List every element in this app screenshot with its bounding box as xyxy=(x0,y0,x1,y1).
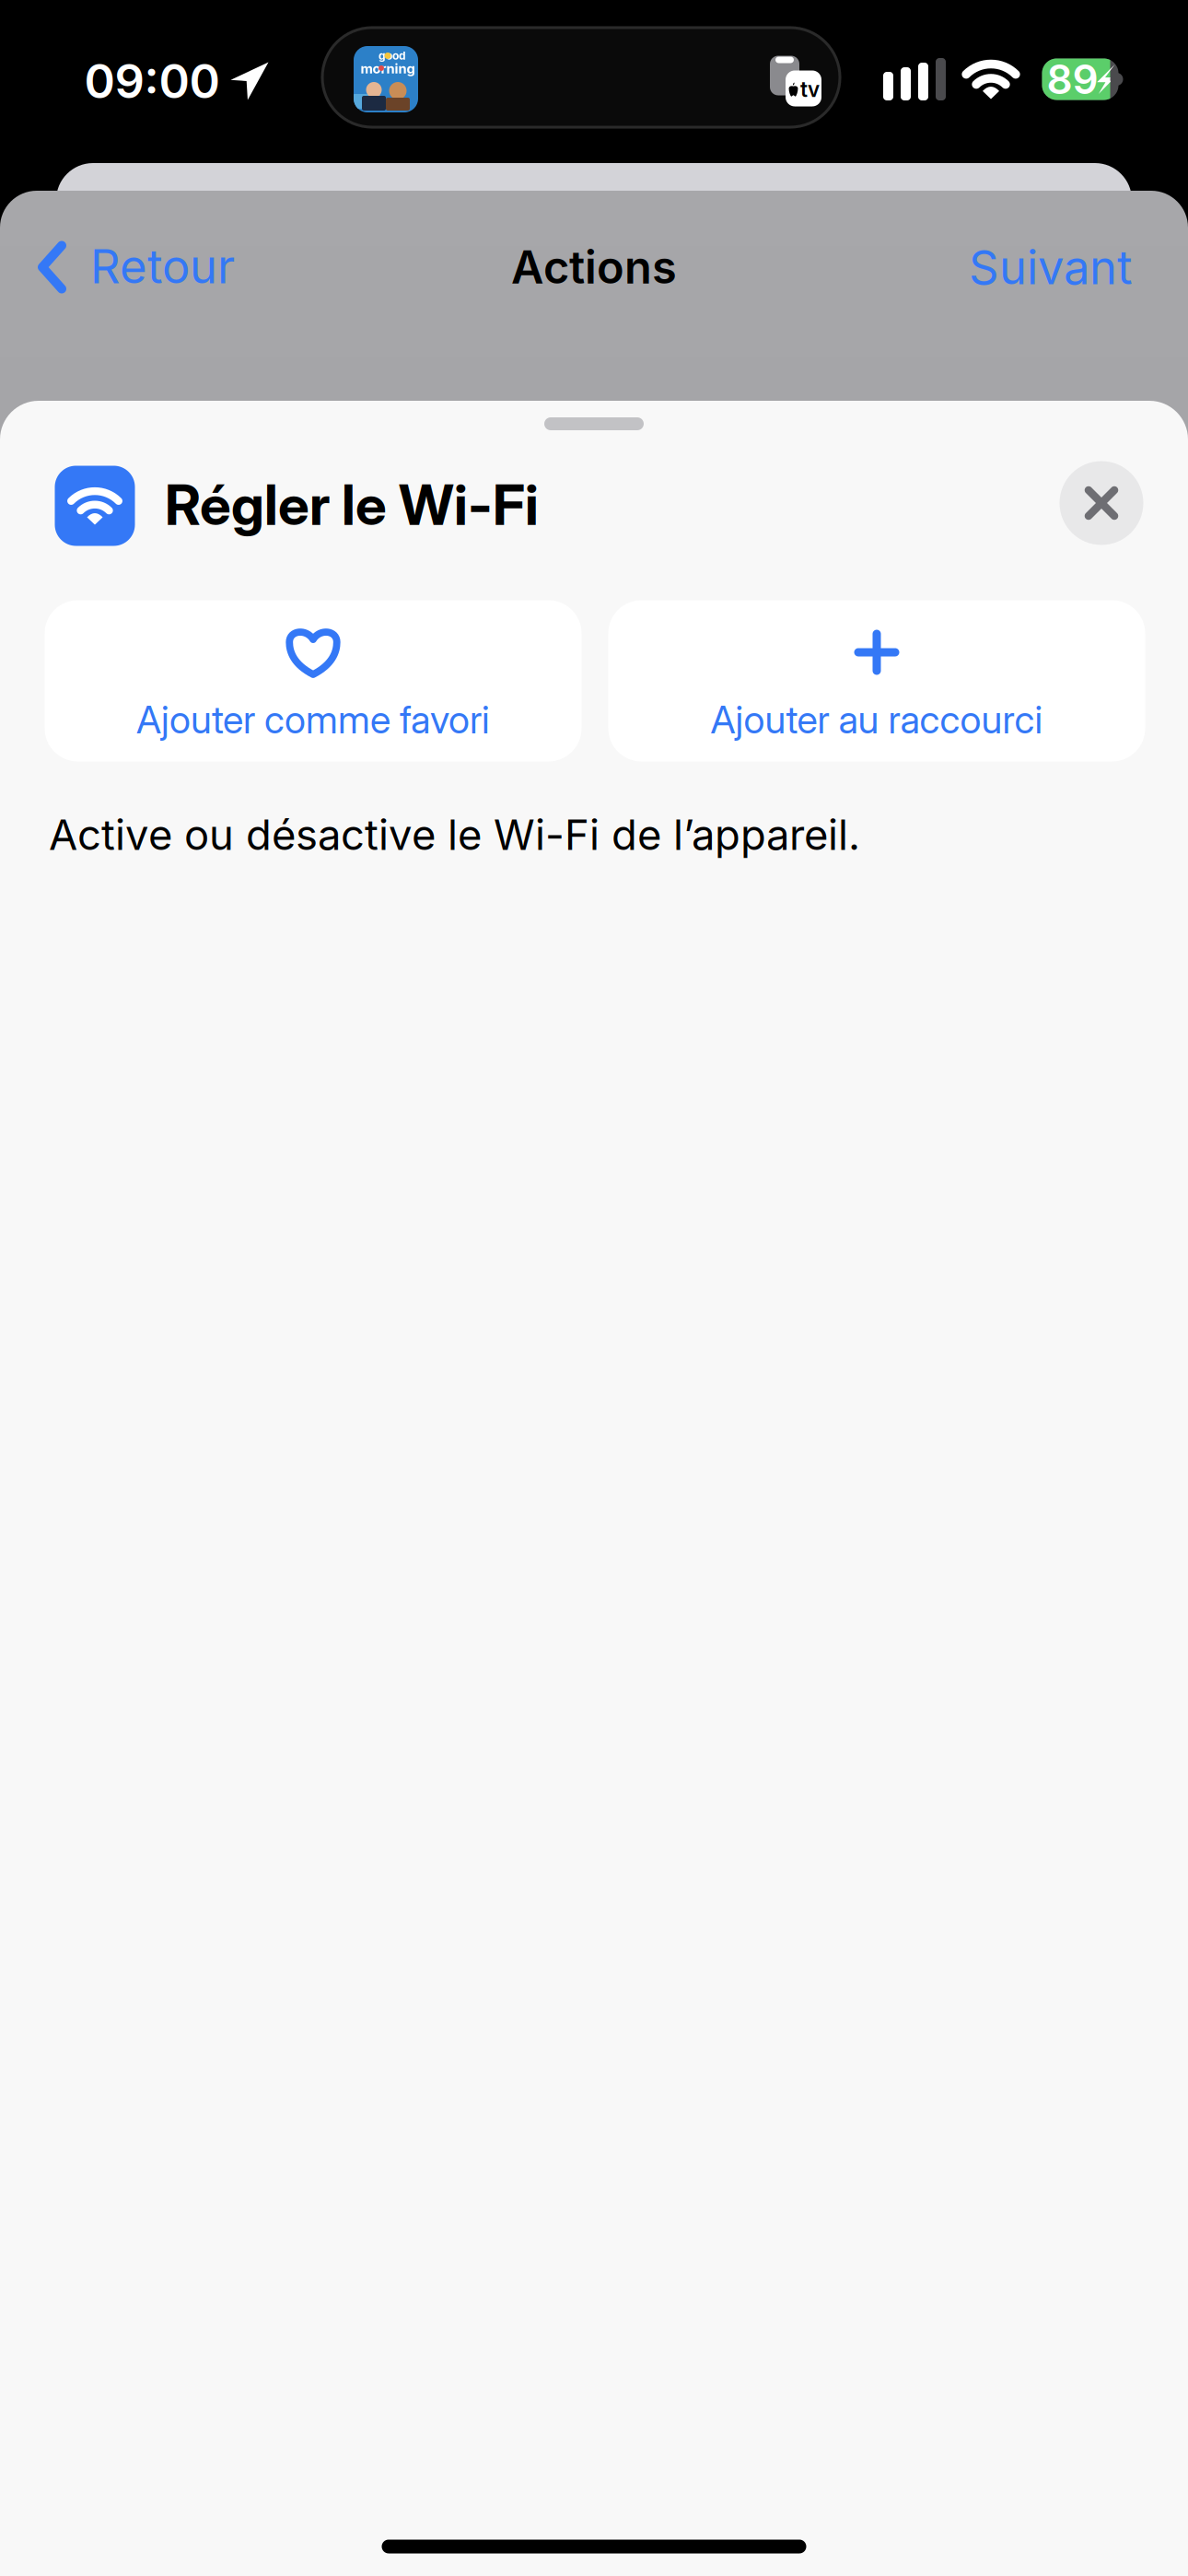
staticText: Actions xyxy=(511,240,677,294)
staticText: Active ou désactive le Wi-Fi de l’appare… xyxy=(49,809,860,860)
staticText: good xyxy=(379,49,406,62)
staticText: Ajouter au raccourci xyxy=(710,697,1043,743)
staticText: Ajouter comme favori xyxy=(136,697,490,743)
staticText: 09:00 xyxy=(84,53,220,109)
staticText: Retour xyxy=(90,238,235,294)
staticText: Suivant xyxy=(969,239,1133,295)
staticText: morning xyxy=(361,60,415,77)
staticText: tv xyxy=(800,77,820,102)
button[interactable]: Ajouter au raccourci xyxy=(608,600,1145,761)
button[interactable]: Suivant xyxy=(949,219,1153,316)
button[interactable]: Ajouter comme favori xyxy=(45,600,582,761)
button[interactable]: Retour xyxy=(42,217,282,317)
staticText: Régler le Wi-Fi xyxy=(165,471,539,538)
staticText: 89 xyxy=(1047,55,1098,104)
button[interactable]: Fermer xyxy=(1060,461,1143,545)
